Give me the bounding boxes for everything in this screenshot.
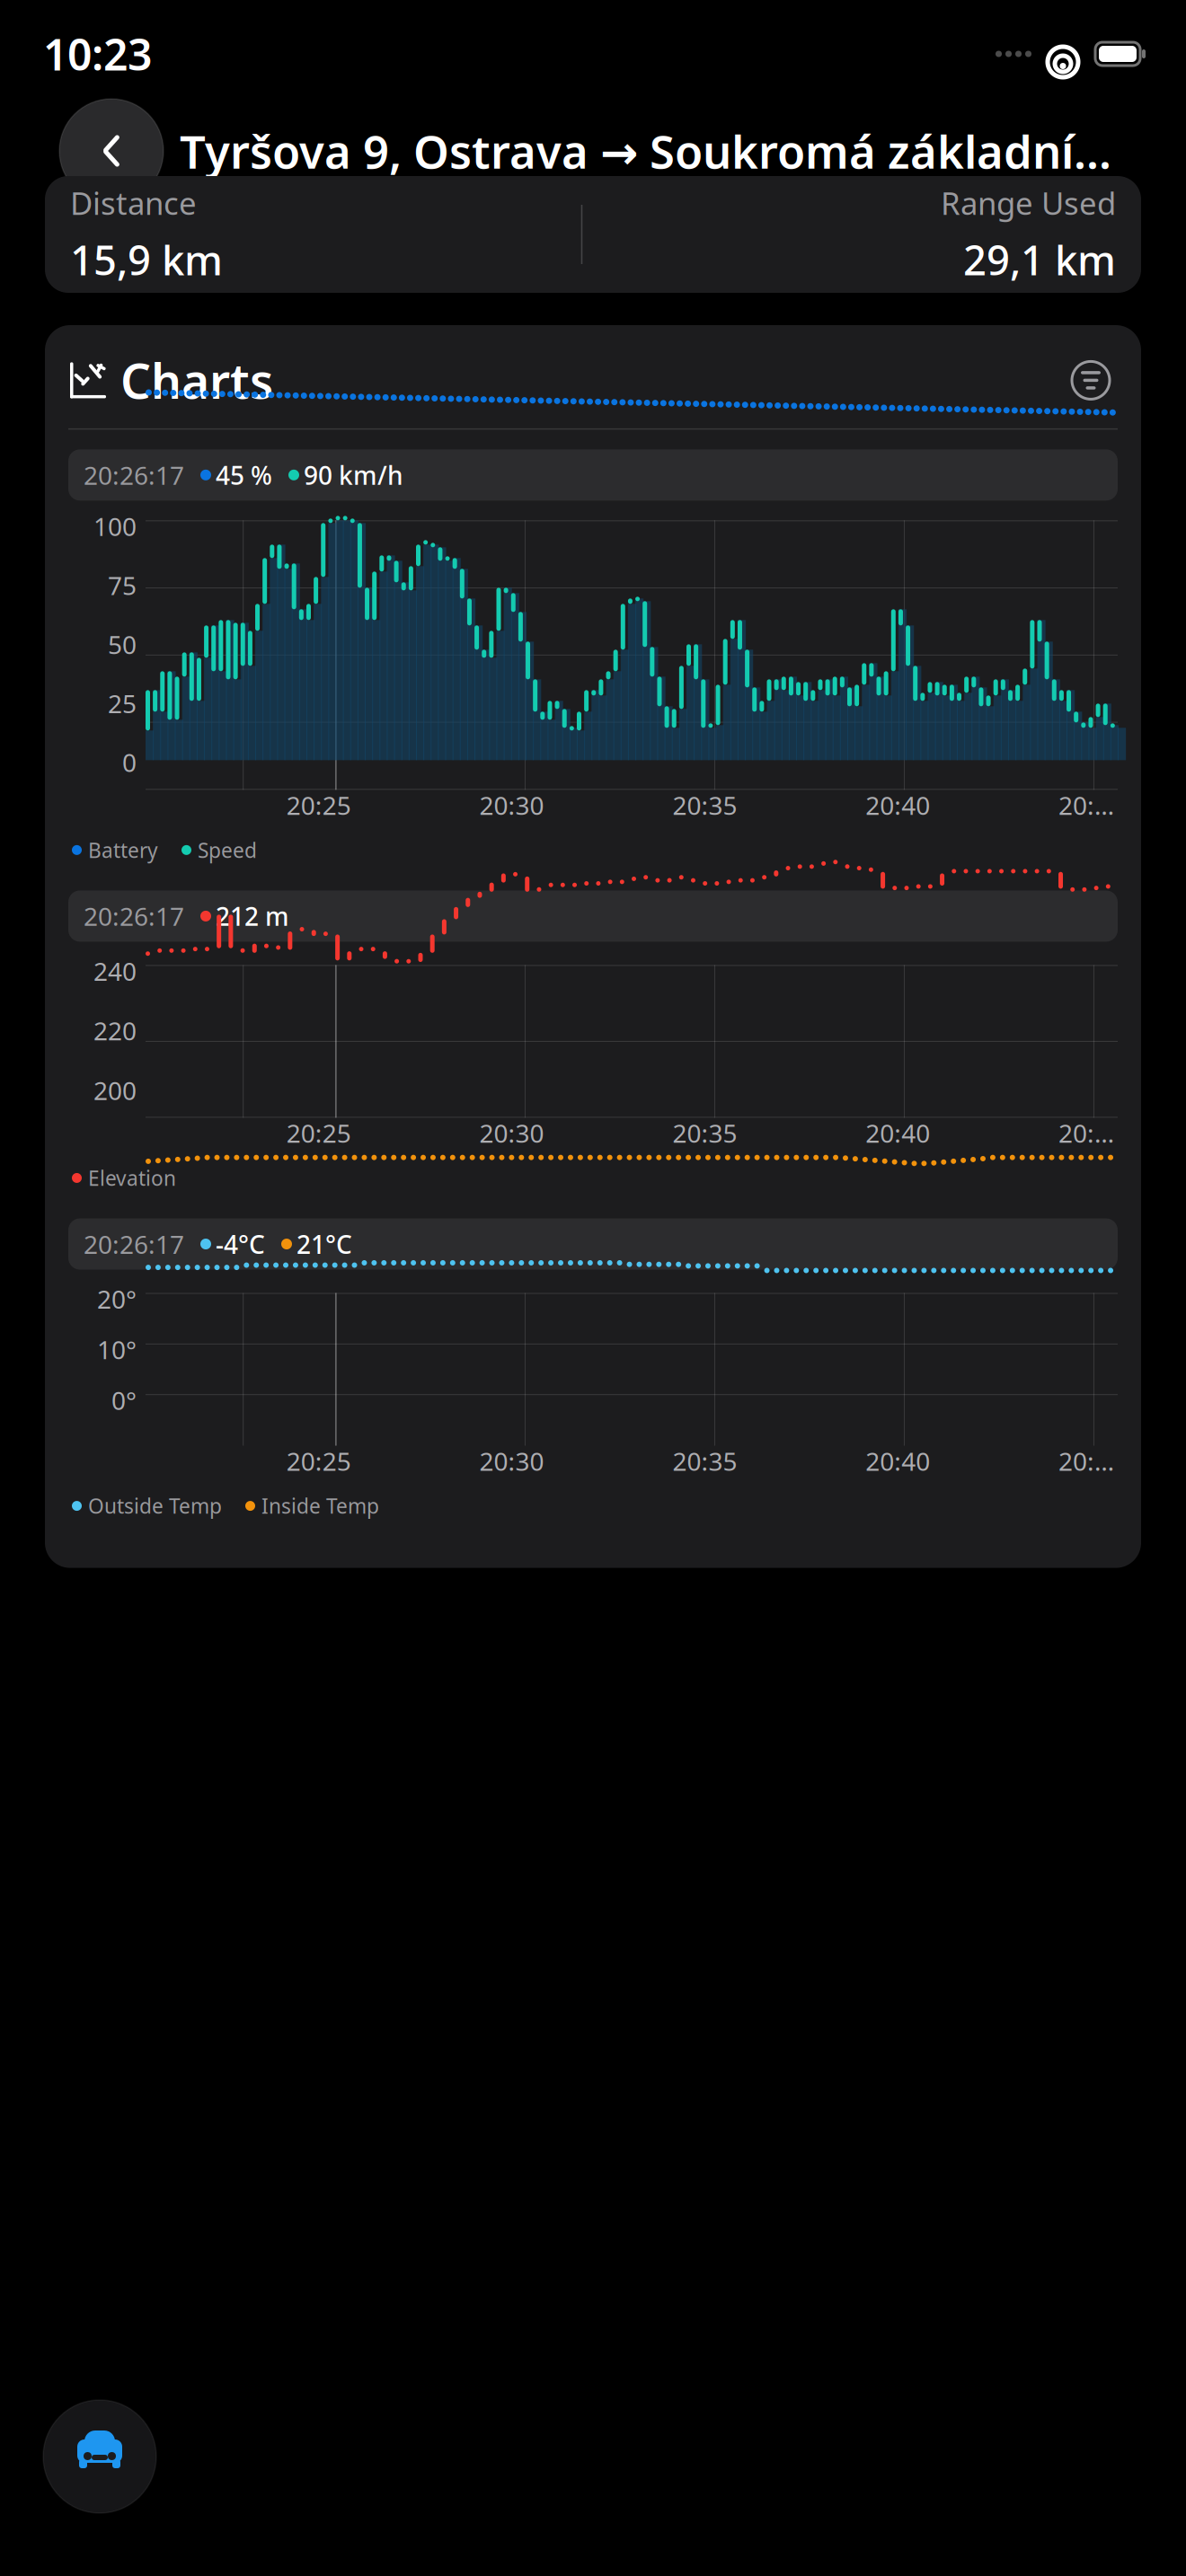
- staticText: 20:25: [286, 1444, 351, 1478]
- staticText: 20:40: [865, 1116, 930, 1150]
- staticText: 20:25: [286, 1116, 351, 1150]
- button[interactable]: Chart options: [1064, 353, 1118, 407]
- staticText: Inside Temp: [261, 1492, 379, 1519]
- staticText: 50: [108, 628, 137, 661]
- staticText: Charts: [120, 348, 273, 412]
- staticText: 75: [108, 569, 137, 602]
- staticText: 20:30: [479, 1116, 544, 1150]
- staticText: Distance: [70, 182, 197, 224]
- staticText: 212 m: [216, 899, 289, 933]
- staticText: 15,9 km: [70, 233, 223, 287]
- staticText: 0: [122, 746, 137, 779]
- staticText: 0°: [111, 1383, 137, 1417]
- staticText: 20:26:17: [84, 1227, 184, 1261]
- staticText: 20:30: [479, 1444, 544, 1478]
- staticText: 20:40: [865, 1444, 930, 1478]
- staticText: -4°C: [216, 1227, 265, 1261]
- staticText: 20:…: [1058, 788, 1114, 822]
- staticText: 20:25: [286, 788, 351, 822]
- staticText: 220: [93, 1014, 137, 1047]
- staticText: 200: [93, 1074, 137, 1107]
- staticText: 45 %: [216, 458, 272, 492]
- button[interactable]: Back: [59, 99, 164, 203]
- staticText: Tyršova 9, Ostrava → Soukromá základní…: [180, 121, 1111, 181]
- staticText: 25: [108, 687, 137, 720]
- staticText: 20:…: [1058, 1116, 1114, 1150]
- staticText: Battery: [88, 836, 158, 864]
- staticText: 10°: [97, 1333, 137, 1366]
- staticText: 20:26:17: [84, 899, 184, 933]
- staticText: 90 km/h: [304, 458, 403, 492]
- staticText: Outside Temp: [88, 1492, 222, 1519]
- staticText: 20:40: [865, 788, 930, 822]
- staticText: 21°C: [296, 1227, 352, 1261]
- staticText: Speed: [198, 836, 257, 864]
- staticText: 20:35: [672, 1444, 737, 1478]
- staticText: 10:23: [43, 25, 152, 82]
- staticText: 240: [93, 954, 137, 988]
- button[interactable]: Vehicle: [43, 2400, 156, 2513]
- staticText: 20:35: [672, 1116, 737, 1150]
- staticText: 20:26:17: [84, 458, 184, 492]
- staticText: 100: [93, 510, 137, 543]
- staticText: 20:…: [1058, 1444, 1114, 1478]
- staticText: 20:30: [479, 788, 544, 822]
- staticText: Range Used: [941, 182, 1116, 224]
- staticText: 20:35: [672, 788, 737, 822]
- staticText: 20°: [97, 1282, 137, 1316]
- staticText: Elevation: [88, 1164, 176, 1191]
- staticText: 29,1 km: [963, 233, 1116, 287]
